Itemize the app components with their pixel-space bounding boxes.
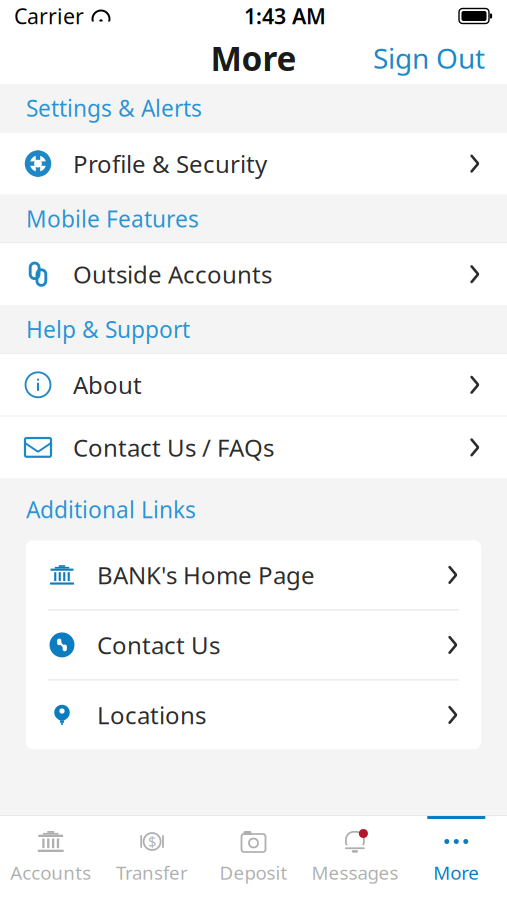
- button[interactable]: Contact Us / FAQs: [0, 416, 507, 478]
- staticText: Messages: [311, 860, 398, 885]
- button[interactable]: $: [101, 816, 203, 900]
- staticText: About: [73, 369, 142, 401]
- staticText: Additional Links: [26, 494, 196, 524]
- button[interactable]: More: [406, 816, 507, 900]
- button[interactable]: Profile & Security: [0, 133, 507, 195]
- staticText: More: [433, 860, 479, 885]
- staticText: Contact Us: [97, 629, 220, 661]
- staticText: Locations: [97, 699, 206, 731]
- button[interactable]: Outside Accounts: [0, 243, 507, 305]
- staticText: Deposit: [219, 860, 287, 885]
- staticText: Transfer: [116, 860, 188, 885]
- staticText: 1:43 AM: [244, 2, 326, 30]
- staticText: Help & Support: [26, 314, 190, 344]
- button[interactable]: Contact Us: [26, 610, 481, 679]
- staticText: Settings & Alerts: [26, 93, 202, 123]
- staticText: $: [148, 832, 156, 851]
- staticText: Sign Out: [373, 39, 485, 77]
- staticText: Mobile Features: [26, 203, 199, 234]
- staticText: Accounts: [10, 860, 91, 885]
- button[interactable]: Accounts: [0, 816, 101, 900]
- button[interactable]: BANK's Home Page: [26, 540, 481, 609]
- button[interactable]: Sign Out: [373, 31, 507, 85]
- button[interactable]: Deposit: [203, 816, 304, 900]
- button[interactable]: Locations: [26, 680, 481, 749]
- button[interactable]: About: [0, 354, 507, 416]
- staticText: Outside Accounts: [73, 258, 272, 290]
- button[interactable]: Messages: [304, 816, 406, 900]
- staticText: Contact Us / FAQs: [73, 431, 274, 463]
- staticText: More: [210, 36, 296, 80]
- staticText: BANK's Home Page: [97, 559, 315, 591]
- staticText: Carrier: [14, 2, 84, 30]
- staticText: Profile & Security: [73, 148, 267, 180]
